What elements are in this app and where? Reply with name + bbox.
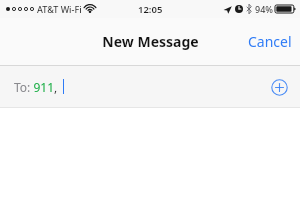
button[interactable]: Add contact — [266, 74, 292, 100]
staticText: New Message — [102, 32, 199, 51]
staticText: 94% — [255, 3, 273, 15]
staticText: To: 911, — [14, 79, 58, 95]
button[interactable]: Cancel — [240, 26, 300, 57]
button[interactable]: To: 911, — [0, 66, 300, 107]
staticText: AT&T Wi-Fi — [37, 3, 82, 15]
staticText: 12:05 — [138, 3, 163, 16]
staticText: Cancel — [248, 32, 292, 51]
